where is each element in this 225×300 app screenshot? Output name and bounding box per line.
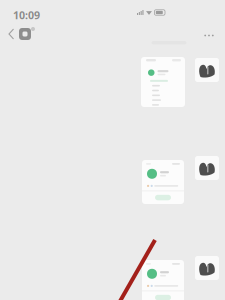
button[interactable]: More: [201, 31, 217, 40]
button[interactable]: [141, 57, 185, 107]
button[interactable]: [142, 260, 184, 300]
button[interactable]: [142, 160, 184, 204]
staticText: 10:09: [13, 8, 40, 22]
button[interactable]: Mini program: [19, 27, 36, 41]
button[interactable]: Contact avatar: [195, 58, 219, 82]
button[interactable]: Contact avatar: [195, 256, 219, 280]
button[interactable]: Contact avatar: [195, 156, 219, 180]
button[interactable]: Back: [6, 27, 17, 41]
